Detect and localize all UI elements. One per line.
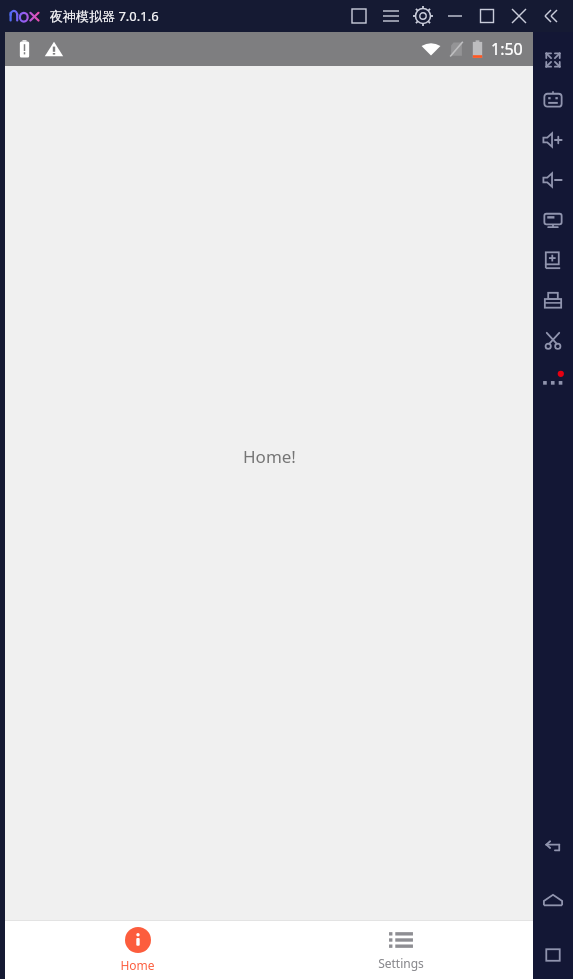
- button[interactable]: Recent apps: [533, 935, 573, 975]
- button[interactable]: Minimize: [439, 0, 471, 32]
- staticText: 1:50: [491, 38, 523, 60]
- staticText: Settings: [378, 955, 424, 971]
- button[interactable]: Back: [533, 827, 573, 867]
- button[interactable]: Fullscreen: [533, 40, 573, 80]
- button[interactable]: Shared folder: [533, 280, 573, 320]
- button[interactable]: Settings: [269, 921, 533, 979]
- button[interactable]: Volume up: [533, 120, 573, 160]
- button[interactable]: Collapse: [535, 0, 567, 32]
- button[interactable]: Install APK: [533, 240, 573, 280]
- staticText: Home: [120, 957, 155, 973]
- button[interactable]: More: [533, 360, 573, 400]
- button[interactable]: Volume down: [533, 160, 573, 200]
- button[interactable]: Home: [5, 921, 269, 979]
- button[interactable]: Settings: [407, 0, 439, 32]
- button[interactable]: Help: [343, 0, 375, 32]
- button[interactable]: Keyboard mapping: [533, 80, 573, 120]
- button[interactable]: Display: [533, 200, 573, 240]
- button[interactable]: Screenshot: [533, 320, 573, 360]
- button[interactable]: Close: [503, 0, 535, 32]
- staticText: Home!: [243, 445, 296, 468]
- button[interactable]: Home: [533, 881, 573, 921]
- button[interactable]: Menu: [375, 0, 407, 32]
- staticText: 夜神模拟器 7.0.1.6: [50, 7, 159, 25]
- button[interactable]: Maximize: [471, 0, 503, 32]
